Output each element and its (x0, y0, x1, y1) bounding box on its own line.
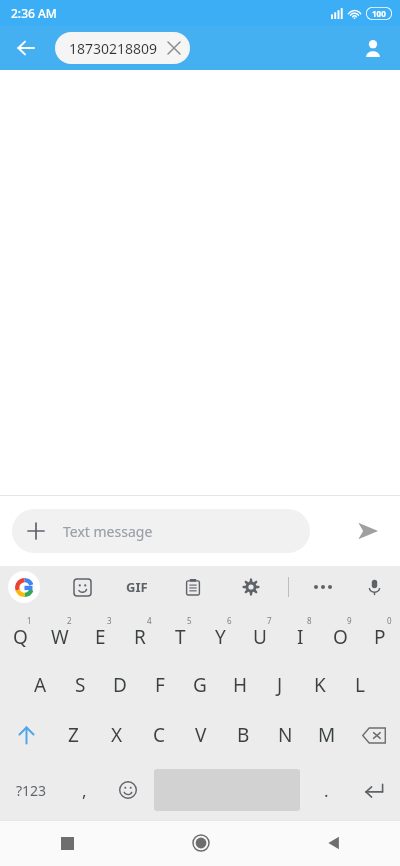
staticText: 4 (147, 615, 152, 626)
button[interactable]: Y (200, 608, 240, 660)
button[interactable]: . (304, 760, 348, 820)
button[interactable]: E (80, 608, 120, 660)
button[interactable]: I (280, 608, 320, 660)
staticText: 18730218809 (69, 39, 158, 58)
staticText: 9 (347, 615, 352, 626)
button[interactable]: Settings (234, 570, 268, 604)
staticText: I (297, 624, 304, 650)
button[interactable]: , (62, 760, 106, 820)
button[interactable]: D (100, 660, 140, 710)
button[interactable]: Voice input (356, 569, 392, 605)
staticText: Text message (63, 522, 153, 541)
staticText: 7 (267, 615, 272, 626)
button[interactable]: Clipboard (176, 570, 210, 604)
button[interactable]: Backspace (348, 710, 400, 760)
staticText: A (34, 672, 47, 698)
staticText: . (324, 779, 329, 802)
button[interactable]: G (180, 660, 220, 710)
button[interactable]: S (60, 660, 100, 710)
staticText: C (153, 722, 166, 748)
staticText: M (318, 722, 336, 748)
button[interactable]: P (360, 608, 400, 660)
button[interactable]: M (306, 710, 348, 760)
staticText: O (333, 624, 348, 650)
staticText: T (175, 624, 186, 650)
staticText: K (314, 672, 326, 698)
staticText: H (233, 672, 248, 698)
button[interactable]: B (222, 710, 264, 760)
staticText: 3 (107, 615, 112, 626)
staticText: 1 (27, 615, 32, 626)
staticText: Y (215, 624, 226, 650)
staticText: Z (68, 722, 79, 748)
button[interactable]: T (160, 608, 200, 660)
button[interactable]: Send (344, 507, 392, 555)
button[interactable]: 18730218809 (55, 32, 190, 64)
button[interactable]: A (20, 660, 60, 710)
staticText: 100 (372, 8, 386, 19)
staticText: , (82, 779, 87, 802)
button[interactable]: V (180, 710, 222, 760)
button[interactable]: L (340, 660, 380, 710)
button[interactable]: W (40, 608, 80, 660)
staticText: 2 (67, 615, 72, 626)
button[interactable]: Emoji (106, 760, 150, 820)
button[interactable]: Enter (348, 760, 400, 820)
button[interactable]: Text message (12, 509, 310, 553)
staticText: F (155, 672, 165, 698)
staticText: D (113, 672, 127, 698)
staticText: Q (13, 624, 28, 650)
button[interactable]: Q (0, 608, 40, 660)
staticText: R (134, 624, 146, 650)
staticText: 8 (307, 615, 312, 626)
staticText: GIF (126, 578, 148, 596)
staticText: V (195, 722, 207, 748)
staticText: L (355, 672, 365, 698)
button[interactable]: R (120, 608, 160, 660)
button[interactable]: Stickers (65, 570, 99, 604)
staticText: 5 (187, 615, 192, 626)
button[interactable]: GIF (117, 567, 157, 607)
button[interactable]: Shift (0, 710, 52, 760)
staticText: G (193, 672, 207, 698)
button[interactable]: ?123 (0, 760, 62, 820)
button[interactable]: Home (134, 820, 267, 866)
button[interactable]: N (264, 710, 306, 760)
button[interactable]: Contact details (354, 29, 392, 67)
staticText: U (253, 624, 267, 650)
staticText: 2:36 AM (11, 5, 57, 21)
button[interactable]: F (140, 660, 180, 710)
button[interactable]: Google (8, 571, 40, 603)
button[interactable]: H (220, 660, 260, 710)
staticText: P (374, 624, 386, 650)
staticText: J (277, 672, 283, 698)
button[interactable]: K (300, 660, 340, 710)
button[interactable]: Back (267, 820, 400, 866)
button[interactable]: Recent apps (0, 820, 134, 866)
staticText: 6 (227, 615, 232, 626)
button[interactable]: X (95, 710, 138, 760)
button[interactable]: O (320, 608, 360, 660)
staticText: X (111, 722, 123, 748)
staticText: 0 (387, 615, 392, 626)
button[interactable]: Back (8, 30, 44, 66)
staticText: S (75, 672, 86, 698)
button[interactable]: More options (305, 569, 341, 605)
staticText: N (278, 722, 293, 748)
staticText: B (237, 722, 250, 748)
button[interactable]: U (240, 608, 280, 660)
staticText: ?123 (16, 781, 47, 800)
button[interactable]: C (138, 710, 180, 760)
staticText: W (51, 624, 69, 650)
staticText: E (95, 624, 106, 650)
button[interactable]: Z (52, 710, 95, 760)
button[interactable]: J (260, 660, 300, 710)
